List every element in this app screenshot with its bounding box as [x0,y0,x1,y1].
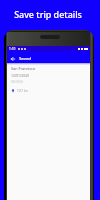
staticText: 1:10 [9,47,16,51]
button[interactable]: Back [10,56,16,62]
staticText: Saved [19,56,31,62]
staticText: Save trip details [0,8,96,20]
staticText: 7.87 km [17,89,29,93]
staticText: 12/01/2020 [11,73,30,78]
staticText: San Francisco [11,66,36,71]
staticText: 08:30:00 [11,80,23,84]
